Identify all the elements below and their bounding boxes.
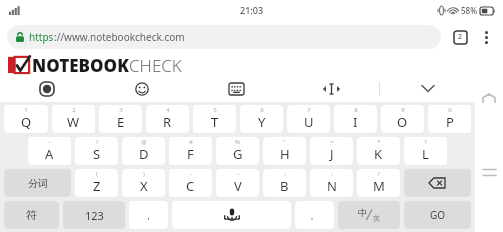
button[interactable]: ! [75,137,118,165]
button[interactable]: ， [129,201,168,229]
button[interactable]: 符 [4,201,59,229]
button[interactable]: Chinese English toggle [338,201,400,229]
button[interactable]: ) [122,169,165,197]
staticText: 21:03 [240,4,264,16]
staticText: T [211,113,219,131]
staticText: S [93,145,101,163]
staticText: N [327,177,337,195]
button[interactable]: 7 [287,105,330,133]
button[interactable]: / [357,169,400,197]
button[interactable]: @ [122,137,165,165]
button[interactable]: ; [310,169,353,197]
staticText: 0 [448,106,452,114]
staticText: J [330,145,334,163]
staticText: 58% [461,5,477,16]
staticText: Q [21,113,32,131]
staticText: ， [144,210,153,221]
button[interactable]: Backspace [404,169,471,197]
staticText: # [189,138,193,146]
staticText: Y [258,113,266,131]
staticText: / [377,170,380,178]
staticText: M [373,177,385,195]
button[interactable]: 9 [381,105,424,133]
button[interactable]: Move cursor [284,75,379,102]
button[interactable]: ? [404,137,447,165]
button[interactable]: Hide keyboard [380,75,475,102]
staticText: Z [93,177,101,195]
staticText: K [374,145,383,163]
staticText: W [67,113,80,131]
button[interactable]: Sogou input settings [0,75,94,102]
button[interactable]: 2 [52,105,95,133]
button[interactable]: 分词 [4,169,71,197]
staticText: G [233,145,243,163]
staticText: B [280,177,289,195]
button[interactable]: 8 [334,105,377,133]
button[interactable]: More options [476,27,496,47]
staticText: F [187,145,194,163]
button[interactable]: Home [476,85,502,111]
staticText: ~ [236,170,240,178]
staticText: O [397,113,408,131]
staticText: GO [430,208,446,222]
staticText: P [446,113,454,131]
button[interactable]: Space, voice input [172,201,291,229]
staticText: 符 [26,208,37,222]
staticText: E [117,113,125,131]
staticText: I [353,113,358,131]
button[interactable]: " [263,137,306,165]
staticText: 9 [401,106,405,114]
staticText: : [284,170,286,178]
button[interactable]: - [169,169,212,197]
staticText: 5 [213,106,217,114]
button[interactable]: Keyboard layout [189,75,284,102]
staticText: 7 [307,106,311,114]
button[interactable]: ( [75,169,118,197]
staticText: 3 [119,106,123,114]
staticText: NOTEBOOK [32,54,129,75]
button[interactable]: : [263,169,306,197]
button[interactable]: * [357,137,400,165]
staticText: X [140,177,148,195]
button[interactable]: https [7,25,441,49]
staticText: H [280,145,290,163]
staticText: 8 [354,106,358,114]
staticText: - [190,170,192,178]
button[interactable]: GO [404,201,471,229]
button[interactable]: Tabs, 2 open [450,27,470,47]
staticText: L [422,145,429,163]
button[interactable]: 1 [4,105,48,133]
button[interactable]: 5 [193,105,236,133]
button[interactable]: = [310,137,353,165]
staticText: * [377,138,381,146]
staticText: 1 [24,106,28,114]
staticText: 英 [373,214,380,223]
button[interactable]: 6 [240,105,283,133]
button[interactable]: 123 [63,201,125,229]
button[interactable]: ~ [28,137,71,165]
staticText: ( [96,170,98,178]
button[interactable]: 4 [146,105,189,133]
button[interactable]: % [216,137,259,165]
staticText: = [330,138,334,146]
staticText: 4 [166,106,170,114]
button[interactable]: ~ [216,169,259,197]
staticText: C [186,177,195,195]
staticText: 中 [358,207,367,218]
staticText: 分词 [28,177,48,190]
staticText: https [29,30,54,44]
staticText: 123 [85,208,104,223]
button[interactable]: 0 [428,105,471,133]
button[interactable]: Recent apps [476,159,502,185]
button[interactable]: # [169,137,212,165]
staticText: ~ [48,138,52,146]
button[interactable]: 3 [99,105,142,133]
button[interactable]: 。 [295,201,334,229]
button[interactable]: Emoji [94,75,189,102]
staticText: U [304,113,314,131]
staticText: A [45,145,54,163]
staticText: ? [424,138,427,146]
staticText: CHECK [129,54,182,75]
staticText: D [139,145,149,163]
staticText: 。 [310,210,319,221]
